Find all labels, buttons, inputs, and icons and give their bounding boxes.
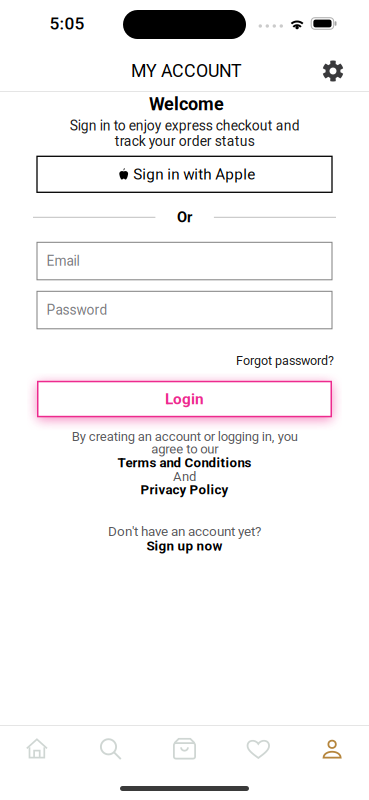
button[interactable]: Search (74, 726, 148, 772)
staticText: Login (165, 390, 204, 408)
button[interactable]: Forgot password? (37, 354, 332, 368)
button[interactable]: Account (295, 726, 369, 772)
staticText: Terms and Conditions (117, 455, 251, 470)
button[interactable]: Login (37, 381, 332, 417)
staticText: Sign up now (146, 538, 222, 554)
staticText: By creating an account or logging in, yo… (71, 429, 297, 457)
staticText: 5:05 (49, 13, 84, 34)
button[interactable]: Bag (148, 726, 221, 772)
button[interactable]: Sign up now (146, 538, 222, 554)
staticText: Forgot password? (236, 353, 334, 368)
button[interactable]: Sign in with Apple (37, 156, 332, 192)
button[interactable]: Home (0, 726, 74, 772)
staticText: Sign in to enjoy express checkout and tr… (69, 118, 299, 149)
staticText: And (173, 469, 196, 484)
staticText: Welcome (149, 93, 224, 115)
staticText: Password (46, 302, 107, 318)
staticText: Privacy Policy (140, 482, 228, 497)
button[interactable]: Wishlist (221, 726, 295, 772)
staticText: Don't have an account yet? (108, 524, 261, 539)
staticText: Or (177, 209, 192, 226)
staticText: MY ACCOUNT (131, 61, 242, 81)
staticText: Email (46, 253, 79, 269)
button[interactable]: Settings (311, 49, 355, 93)
button[interactable]: Privacy Policy (140, 483, 228, 496)
staticText: Sign in with Apple (133, 165, 255, 183)
button[interactable]: Terms and Conditions (117, 456, 251, 469)
